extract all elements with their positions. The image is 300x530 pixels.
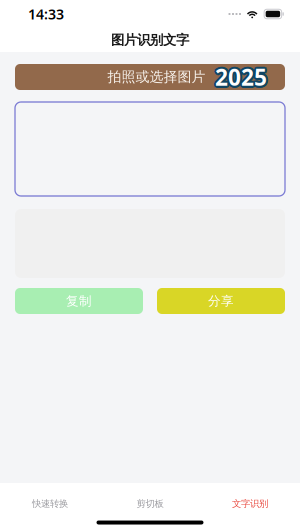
button[interactable]: 分享 bbox=[157, 288, 285, 314]
staticText: 14:33 bbox=[28, 4, 64, 24]
button[interactable]: 文字识别 bbox=[200, 482, 300, 509]
button[interactable]: 快速转换 bbox=[0, 482, 100, 509]
staticText: 分享 bbox=[208, 293, 234, 309]
staticText: 2025 bbox=[213, 60, 265, 91]
staticText: 2025 bbox=[215, 62, 267, 92]
staticText: 拍照或选择图片 bbox=[107, 68, 205, 86]
staticText: 2025 bbox=[217, 62, 269, 92]
staticText: 剪切板 bbox=[136, 498, 163, 509]
staticText: 文字识别 bbox=[232, 498, 268, 509]
button[interactable]: 拍照或选择图片 bbox=[15, 64, 285, 90]
button[interactable]: 剪切板 bbox=[100, 482, 200, 509]
staticText: 2025 bbox=[216, 60, 268, 91]
staticText: 2025 bbox=[216, 63, 268, 94]
staticText: 2025 bbox=[215, 59, 267, 90]
staticText: 复制 bbox=[66, 293, 92, 309]
button[interactable]: 复制 bbox=[15, 288, 143, 314]
staticText: 2025 bbox=[215, 64, 267, 95]
staticText: 图片识别文字 bbox=[111, 32, 189, 48]
staticText: 2025 bbox=[213, 61, 265, 92]
staticText: 快速转换 bbox=[32, 498, 68, 509]
staticText: 2025 bbox=[213, 63, 265, 94]
